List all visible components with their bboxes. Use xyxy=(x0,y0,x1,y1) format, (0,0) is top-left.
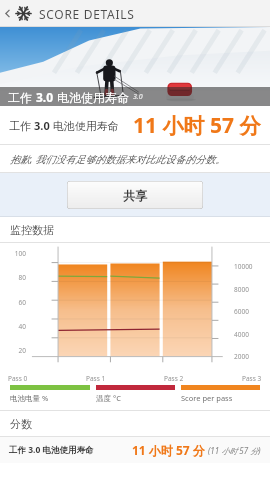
staticText: 8000 xyxy=(234,285,249,294)
staticText: 工作 3.0 电池使用寿命 xyxy=(9,444,94,456)
staticText: 共享 xyxy=(123,188,147,203)
staticText: 11 小时 57 分 xyxy=(132,442,205,458)
staticText: 3.0 xyxy=(133,92,143,102)
staticText: 80 xyxy=(18,273,26,282)
staticText: 20 xyxy=(18,346,26,355)
button[interactable]: 工作 3.0 电池使用寿命 xyxy=(0,437,270,463)
staticText: (11 小时 57 分) xyxy=(208,445,261,456)
staticText: 3.0 xyxy=(34,118,50,133)
staticText: 3.0 xyxy=(36,89,54,105)
staticText: 10000 xyxy=(234,262,253,271)
staticText: 电池使用寿命 xyxy=(50,118,119,133)
staticText: 2000 xyxy=(234,352,249,361)
staticText: 抱歉, 我们没有足够的数据来对比此设备的分数。 xyxy=(10,152,226,166)
staticText: 监控数据 xyxy=(10,223,54,237)
staticText: 60 xyxy=(18,298,26,307)
staticText: 11 小时 57 分 xyxy=(133,111,261,140)
button[interactable]: 共享 xyxy=(67,181,203,209)
staticText: 工作 xyxy=(8,89,36,105)
staticText: 电池电量 % xyxy=(10,393,49,403)
staticText: 分数 xyxy=(10,417,32,431)
staticText: SCORE DETAILS xyxy=(39,6,135,22)
staticText: Pass 1 xyxy=(86,374,106,383)
staticText: 4000 xyxy=(234,330,249,339)
staticText: 100 xyxy=(14,249,26,258)
staticText: 工作 xyxy=(9,118,34,133)
staticText: Pass 2 xyxy=(164,374,184,383)
staticText: 40 xyxy=(18,322,26,331)
staticText: 温度 °C xyxy=(96,393,121,403)
staticText: Pass 0 xyxy=(8,374,28,383)
staticText: 6000 xyxy=(234,307,249,316)
staticText: 电池使用寿命 xyxy=(54,89,130,105)
staticText: Score per pass xyxy=(181,393,233,403)
staticText: Pass 3 xyxy=(242,374,262,383)
button[interactable]: Back xyxy=(0,0,14,27)
